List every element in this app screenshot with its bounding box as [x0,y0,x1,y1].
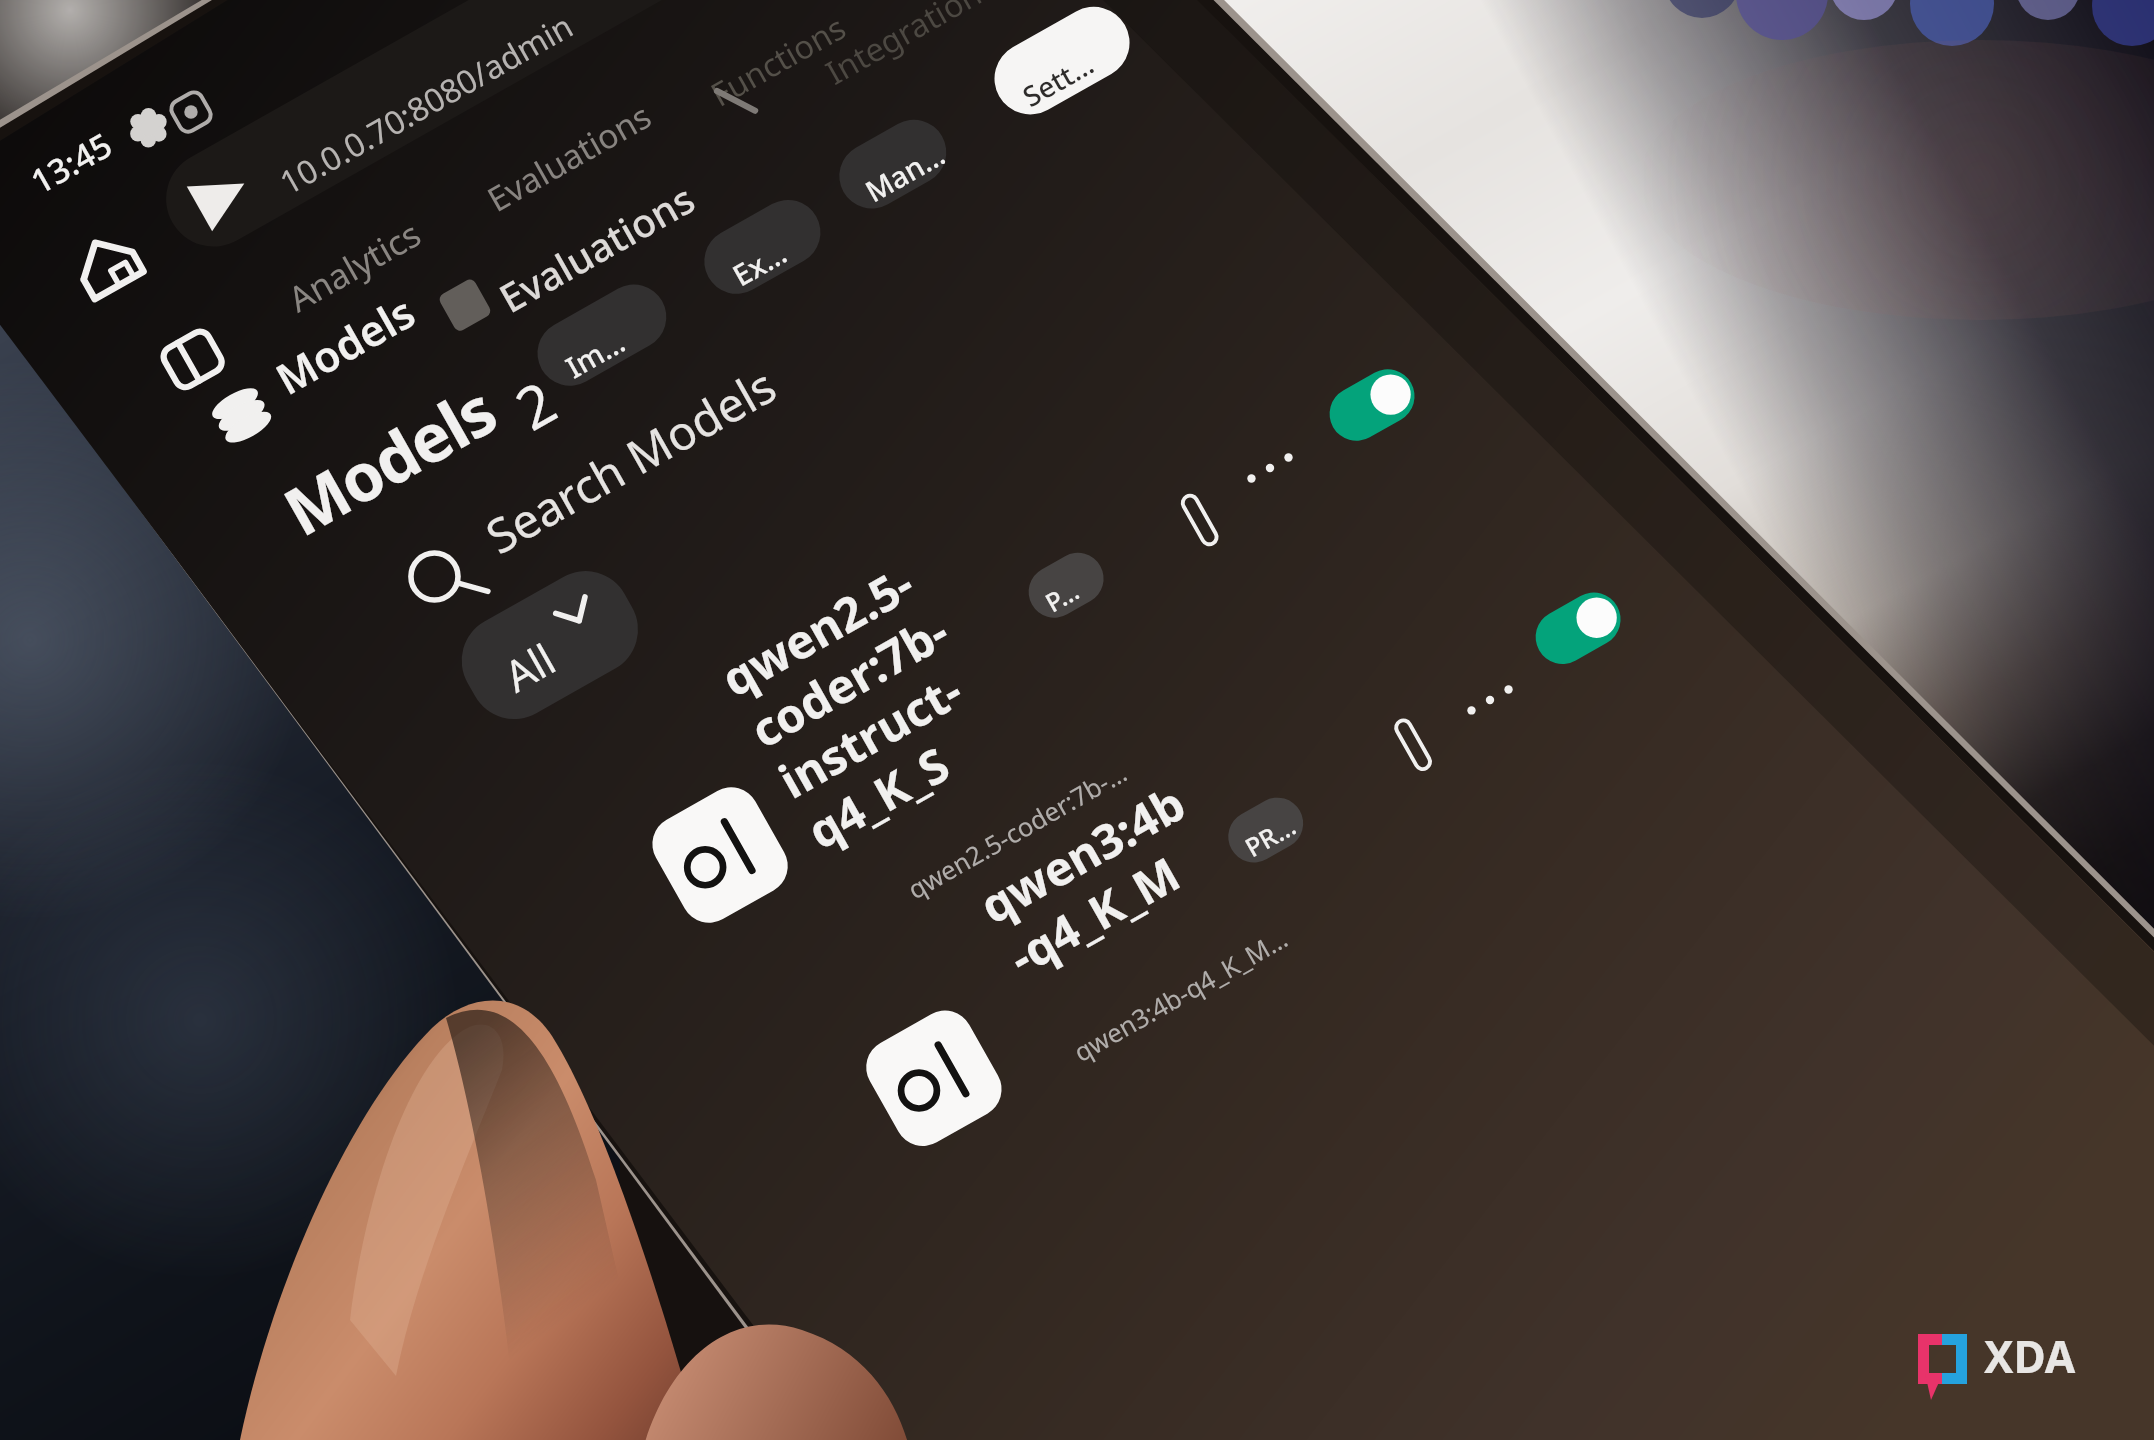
button[interactable]: Evaluations tab [462,59,689,220]
button[interactable]: qwen3:4b-q4_K_M [782,639,1494,1254]
button[interactable]: qwen2.5-coder:7b-instruct-q4_K_S [565,414,1277,1029]
staticText: Sett… [1015,44,1100,115]
staticText: qwen3:4b-q4_K_M… [1067,920,1294,1069]
staticText: Man… [858,134,952,211]
button[interactable]: Manage models [828,108,958,220]
staticText: P… [1038,572,1085,619]
button[interactable]: Evaluations [473,158,702,322]
staticText: XDA [1984,1326,2076,1386]
button[interactable]: Edit model [1381,706,1446,782]
staticText: Search Models [474,353,787,568]
staticText: Evaluations [479,92,659,222]
staticText: qwen2.5- coder:7b- instruct- q4_K_S [710,547,1017,863]
button[interactable]: Enable model [1319,357,1426,452]
staticText: Ex… [725,233,794,295]
staticText: 2 [501,362,570,447]
button[interactable]: Search Models [385,200,1026,619]
button[interactable]: Models tab [255,273,425,403]
button[interactable]: Filter: All [445,555,654,735]
staticText: All [494,630,566,705]
button[interactable]: Models database [200,374,283,456]
staticText: 10.0.0.70:8080/admin [271,3,580,204]
button[interactable]: Home [51,207,156,309]
button[interactable]: Edit model [1168,482,1233,558]
button[interactable]: More options [1450,659,1532,742]
button[interactable]: Analytics tab [266,178,454,318]
button[interactable]: Export models [692,188,832,306]
button[interactable]: More options [1230,427,1311,510]
staticText: Integrations [817,0,1002,94]
staticText: qwen2.5-coder:7b-… [901,754,1133,906]
staticText: Analytics [279,210,429,322]
button[interactable]: Address bar [149,0,714,264]
staticText: Functions [702,4,853,116]
button[interactable]: Toggle sidebar [148,311,234,394]
button[interactable]: Integrations tab [801,0,1023,92]
staticText: PR… [1238,807,1301,864]
button[interactable]: Functions tab [685,0,869,115]
staticText: Im… [558,322,632,387]
button[interactable]: Settings [981,0,1142,128]
button[interactable]: Import models [526,273,678,397]
staticText: Evaluations [489,171,703,324]
staticText: Models [265,283,425,407]
button[interactable]: Enable model [1525,581,1632,675]
staticText: Models [267,364,510,555]
staticText: qwen3:4b -q4_K_M [968,770,1225,989]
staticText: 13:45 [22,121,120,204]
